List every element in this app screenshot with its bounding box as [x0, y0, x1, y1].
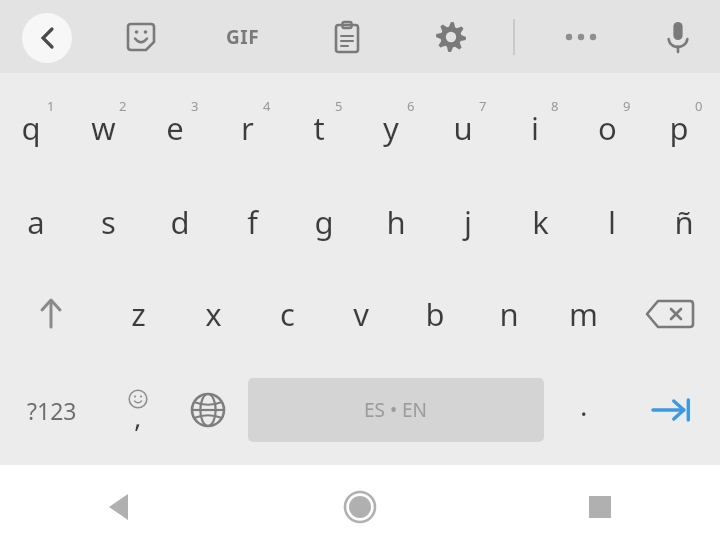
button[interactable]: Home: [240, 465, 480, 549]
button[interactable]: Shift: [0, 270, 101, 358]
staticText: ?123: [27, 395, 77, 426]
button[interactable]: ES • EN: [248, 378, 544, 442]
button[interactable]: s: [72, 178, 144, 266]
staticText: 7: [479, 97, 487, 115]
staticText: l: [608, 201, 616, 243]
button[interactable]: Back: [0, 465, 240, 549]
staticText: i: [531, 107, 539, 149]
button[interactable]: p: [648, 78, 720, 168]
staticText: p: [669, 107, 689, 149]
button[interactable]: g: [288, 178, 360, 266]
button[interactable]: Back: [22, 13, 72, 63]
staticText: GIF: [226, 24, 260, 50]
button[interactable]: c: [250, 270, 324, 358]
button[interactable]: u: [432, 78, 504, 168]
button[interactable]: e: [144, 78, 216, 168]
button[interactable]: d: [144, 178, 216, 266]
button[interactable]: y: [360, 78, 432, 168]
staticText: v: [353, 293, 369, 335]
staticText: b: [425, 293, 445, 335]
staticText: w: [91, 107, 116, 149]
staticText: u: [453, 107, 473, 149]
button[interactable]: Backspace: [620, 270, 720, 358]
staticText: z: [131, 293, 146, 335]
staticText: e: [166, 107, 184, 149]
staticText: j: [464, 201, 472, 243]
staticText: d: [170, 201, 190, 243]
staticText: 5: [335, 97, 343, 115]
staticText: y: [383, 107, 399, 149]
button[interactable]: Clipboard: [316, 13, 378, 61]
staticText: m: [569, 293, 598, 335]
staticText: x: [205, 293, 222, 335]
staticText: t: [313, 107, 325, 149]
button[interactable]: Comma and emoji: [103, 370, 173, 450]
button[interactable]: x: [176, 270, 250, 358]
staticText: g: [314, 201, 334, 243]
staticText: 8: [551, 97, 559, 115]
button[interactable]: a: [0, 178, 72, 266]
staticText: a: [27, 201, 45, 243]
staticText: 4: [263, 97, 271, 115]
button[interactable]: l: [576, 178, 648, 266]
button[interactable]: i: [504, 78, 576, 168]
staticText: 2: [119, 97, 127, 115]
staticText: ,: [134, 397, 142, 435]
button[interactable]: Next: [619, 370, 720, 450]
staticText: ES • EN: [364, 397, 428, 423]
button[interactable]: Stickers: [110, 13, 172, 61]
staticText: h: [386, 201, 406, 243]
staticText: s: [101, 201, 116, 243]
button[interactable]: r: [216, 78, 288, 168]
button[interactable]: Voice input: [652, 13, 704, 61]
staticText: f: [247, 201, 258, 243]
button[interactable]: q: [0, 78, 72, 168]
button[interactable]: w: [72, 78, 144, 168]
button[interactable]: More options: [550, 13, 612, 61]
button[interactable]: k: [504, 178, 576, 266]
staticText: k: [532, 201, 549, 243]
staticText: o: [598, 107, 617, 149]
staticText: 1: [47, 97, 55, 115]
button[interactable]: m: [546, 270, 620, 358]
staticText: .: [580, 386, 588, 424]
button[interactable]: ?123: [0, 370, 103, 450]
button[interactable]: o: [576, 78, 648, 168]
button[interactable]: ñ: [648, 178, 720, 266]
staticText: c: [280, 293, 295, 335]
button[interactable]: Change language: [173, 370, 243, 450]
button[interactable]: t: [288, 78, 360, 168]
staticText: 3: [191, 97, 199, 115]
staticText: ñ: [674, 201, 694, 243]
button[interactable]: .: [549, 370, 619, 450]
staticText: 9: [623, 97, 631, 115]
staticText: 6: [407, 97, 415, 115]
button[interactable]: v: [324, 270, 398, 358]
button[interactable]: h: [360, 178, 432, 266]
button[interactable]: n: [472, 270, 546, 358]
button[interactable]: j: [432, 178, 504, 266]
button[interactable]: GIF: [212, 13, 274, 61]
button[interactable]: Settings: [420, 13, 482, 61]
button[interactable]: b: [398, 270, 472, 358]
staticText: 0: [695, 97, 703, 115]
staticText: r: [241, 107, 254, 149]
staticText: n: [499, 293, 519, 335]
button[interactable]: z: [101, 270, 176, 358]
staticText: q: [21, 107, 41, 149]
button[interactable]: f: [216, 178, 288, 266]
button[interactable]: Recent apps: [480, 465, 720, 549]
